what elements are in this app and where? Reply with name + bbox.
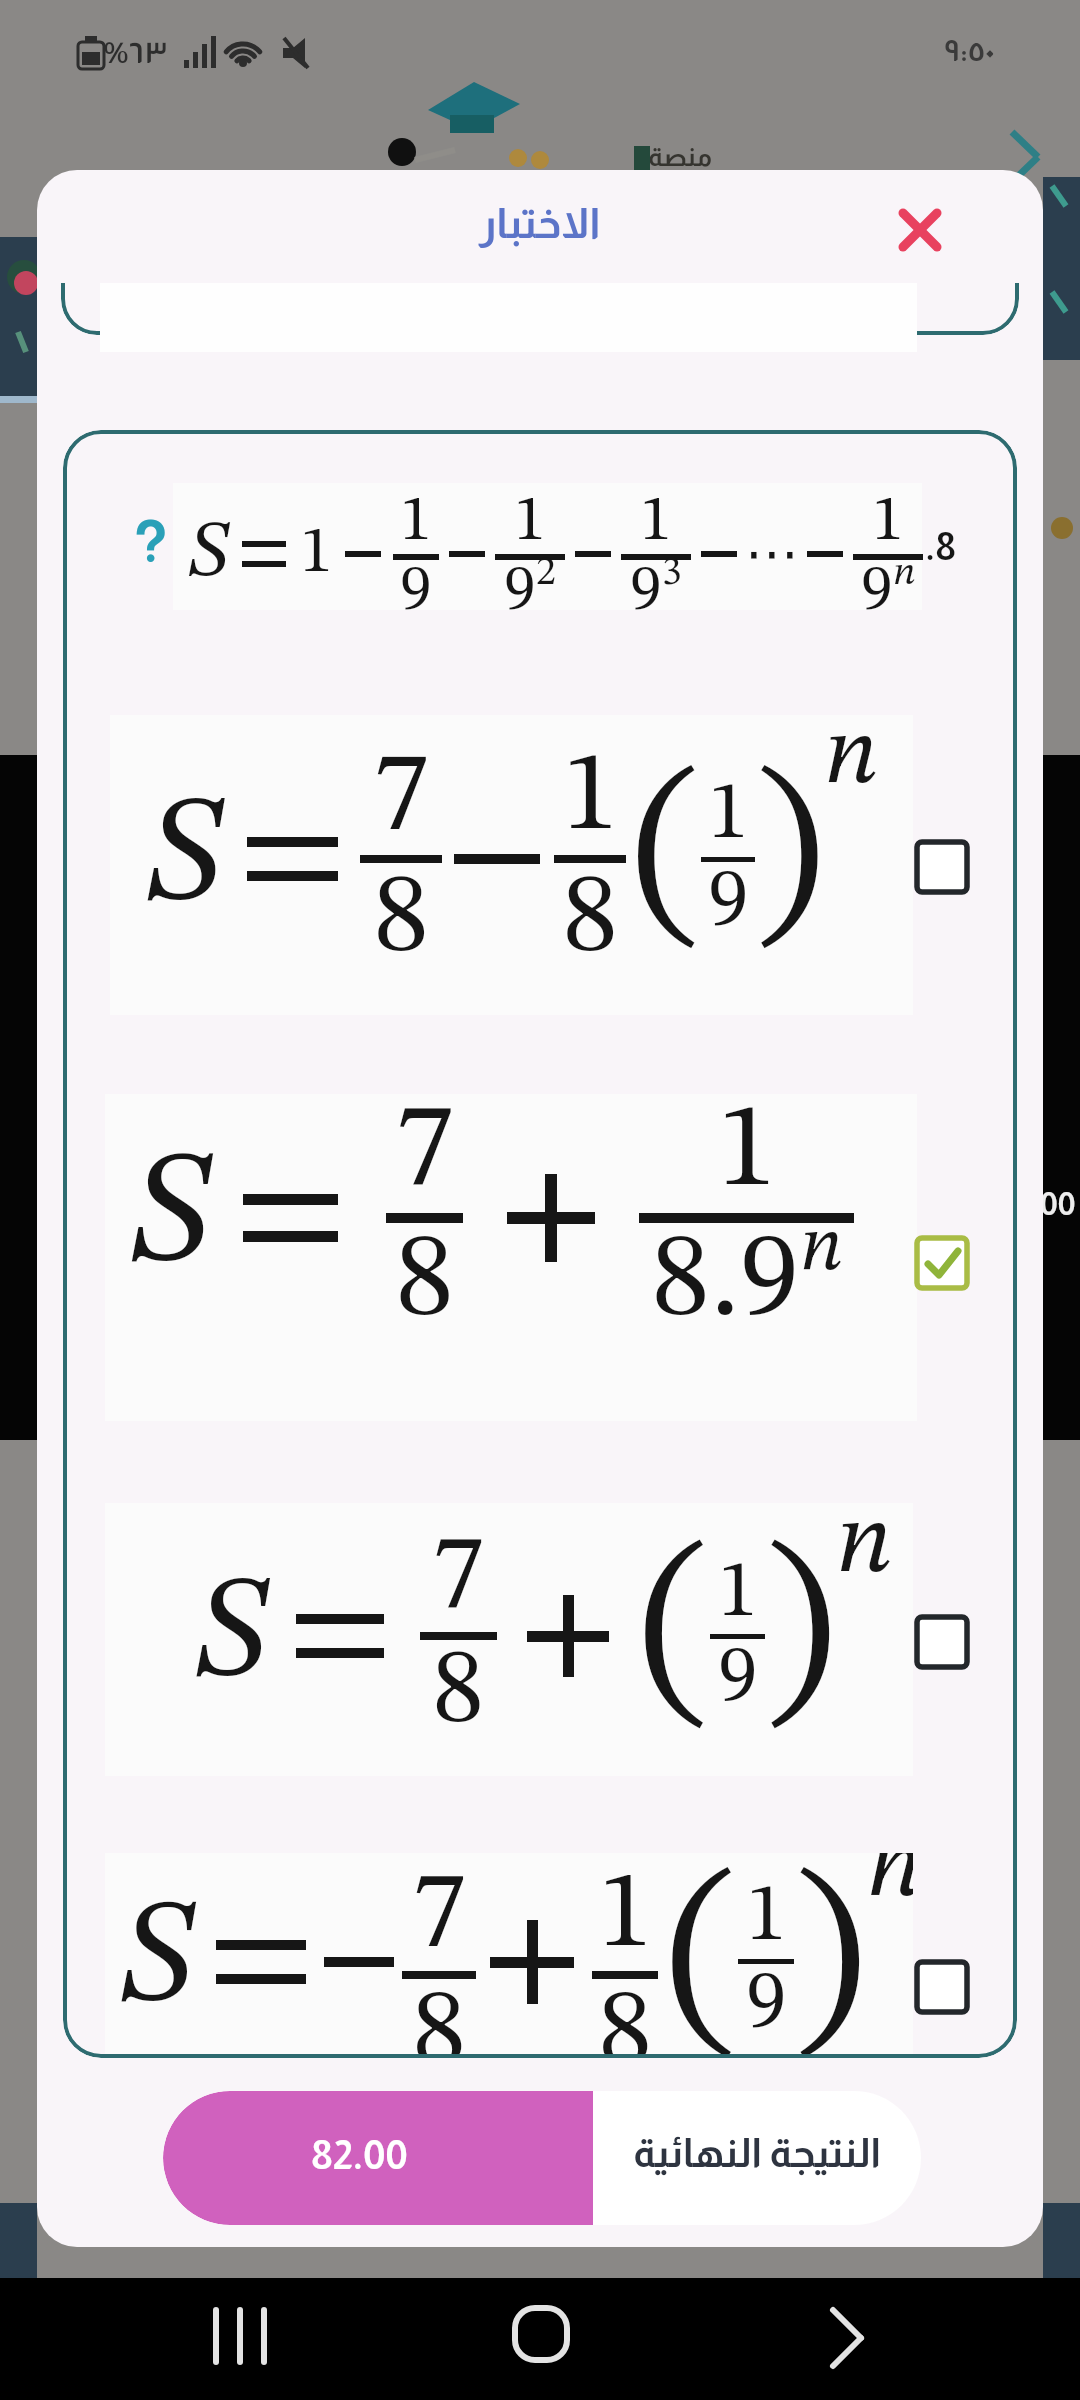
staticText: ٩:٥٠ bbox=[944, 34, 995, 67]
button[interactable] bbox=[110, 715, 913, 1015]
button[interactable] bbox=[917, 1962, 967, 2012]
staticText: .8 bbox=[925, 526, 956, 568]
button[interactable] bbox=[815, 2300, 879, 2378]
staticText: 1 bbox=[598, 1861, 653, 1971]
staticText: 1 bbox=[746, 1877, 787, 1959]
staticText: S bbox=[193, 1565, 270, 1708]
staticText: 8 bbox=[395, 1223, 455, 1343]
staticText: ) bbox=[755, 759, 824, 959]
staticText: 82.00 bbox=[311, 2133, 408, 2178]
button[interactable] bbox=[515, 2308, 567, 2360]
staticText: 1 bbox=[718, 1554, 758, 1634]
staticText: S bbox=[118, 1889, 196, 2034]
staticText: n bbox=[824, 709, 879, 805]
staticText: 3 bbox=[662, 554, 682, 594]
staticText: 8 bbox=[432, 1640, 485, 1746]
staticText: 00 bbox=[1040, 1186, 1076, 1222]
staticText: 1 bbox=[562, 741, 619, 855]
staticText: 1 bbox=[717, 1093, 777, 1213]
staticText: 1 bbox=[640, 490, 672, 554]
staticText: 9 bbox=[400, 560, 432, 617]
staticText: 9 bbox=[504, 560, 536, 617]
staticText: 7 bbox=[395, 1093, 455, 1213]
staticText: 8 bbox=[562, 863, 619, 977]
staticText: n bbox=[893, 554, 916, 594]
staticText: 9 bbox=[746, 1964, 787, 2046]
staticText: الاختبار bbox=[479, 200, 601, 247]
staticText: ? bbox=[133, 510, 168, 575]
button[interactable] bbox=[917, 1617, 967, 1667]
staticText: 9 bbox=[861, 560, 893, 617]
staticText: 2 bbox=[536, 554, 556, 594]
staticText: 1 bbox=[300, 521, 333, 587]
staticText: 7 bbox=[373, 741, 430, 855]
button[interactable]: 82.00 bbox=[163, 2091, 921, 2225]
staticText: 1 bbox=[708, 775, 749, 857]
staticText: 1 bbox=[872, 490, 904, 554]
staticText: 9 bbox=[630, 560, 662, 617]
staticText: 7 bbox=[432, 1526, 485, 1632]
staticText: 9 bbox=[718, 1639, 758, 1719]
staticText: 1 bbox=[400, 490, 432, 554]
staticText: 8 bbox=[412, 1979, 467, 2054]
staticText: ( bbox=[632, 759, 701, 959]
staticText: ) bbox=[794, 1861, 866, 2054]
staticText: %٦٣ bbox=[104, 36, 168, 69]
staticText: 9 bbox=[708, 862, 749, 944]
staticText: 7 bbox=[412, 1861, 467, 1971]
staticText: ( bbox=[666, 1861, 738, 2054]
button[interactable] bbox=[917, 1238, 967, 1288]
staticText: n bbox=[836, 1495, 893, 1595]
button[interactable] bbox=[895, 205, 945, 255]
staticText: النتيجة النهائية bbox=[633, 2131, 881, 2176]
staticText: ( bbox=[639, 1534, 710, 1739]
staticText: ⋯ bbox=[745, 522, 799, 585]
staticText: 8.9 bbox=[651, 1223, 800, 1343]
button[interactable] bbox=[105, 1853, 913, 2054]
button[interactable] bbox=[198, 2300, 282, 2378]
button[interactable] bbox=[105, 1094, 917, 1421]
staticText: منصة bbox=[648, 142, 713, 171]
staticText: S bbox=[144, 784, 225, 934]
staticText: S bbox=[128, 1139, 213, 1297]
staticText: n bbox=[866, 1853, 913, 1919]
button[interactable] bbox=[917, 842, 967, 892]
staticText: 8 bbox=[373, 863, 430, 977]
staticText: S bbox=[187, 514, 230, 594]
button[interactable] bbox=[105, 1503, 913, 1776]
staticText: n bbox=[800, 1211, 843, 1287]
staticText: 1 bbox=[514, 490, 546, 554]
staticText: ) bbox=[765, 1534, 836, 1739]
staticText: 8 bbox=[598, 1979, 653, 2054]
